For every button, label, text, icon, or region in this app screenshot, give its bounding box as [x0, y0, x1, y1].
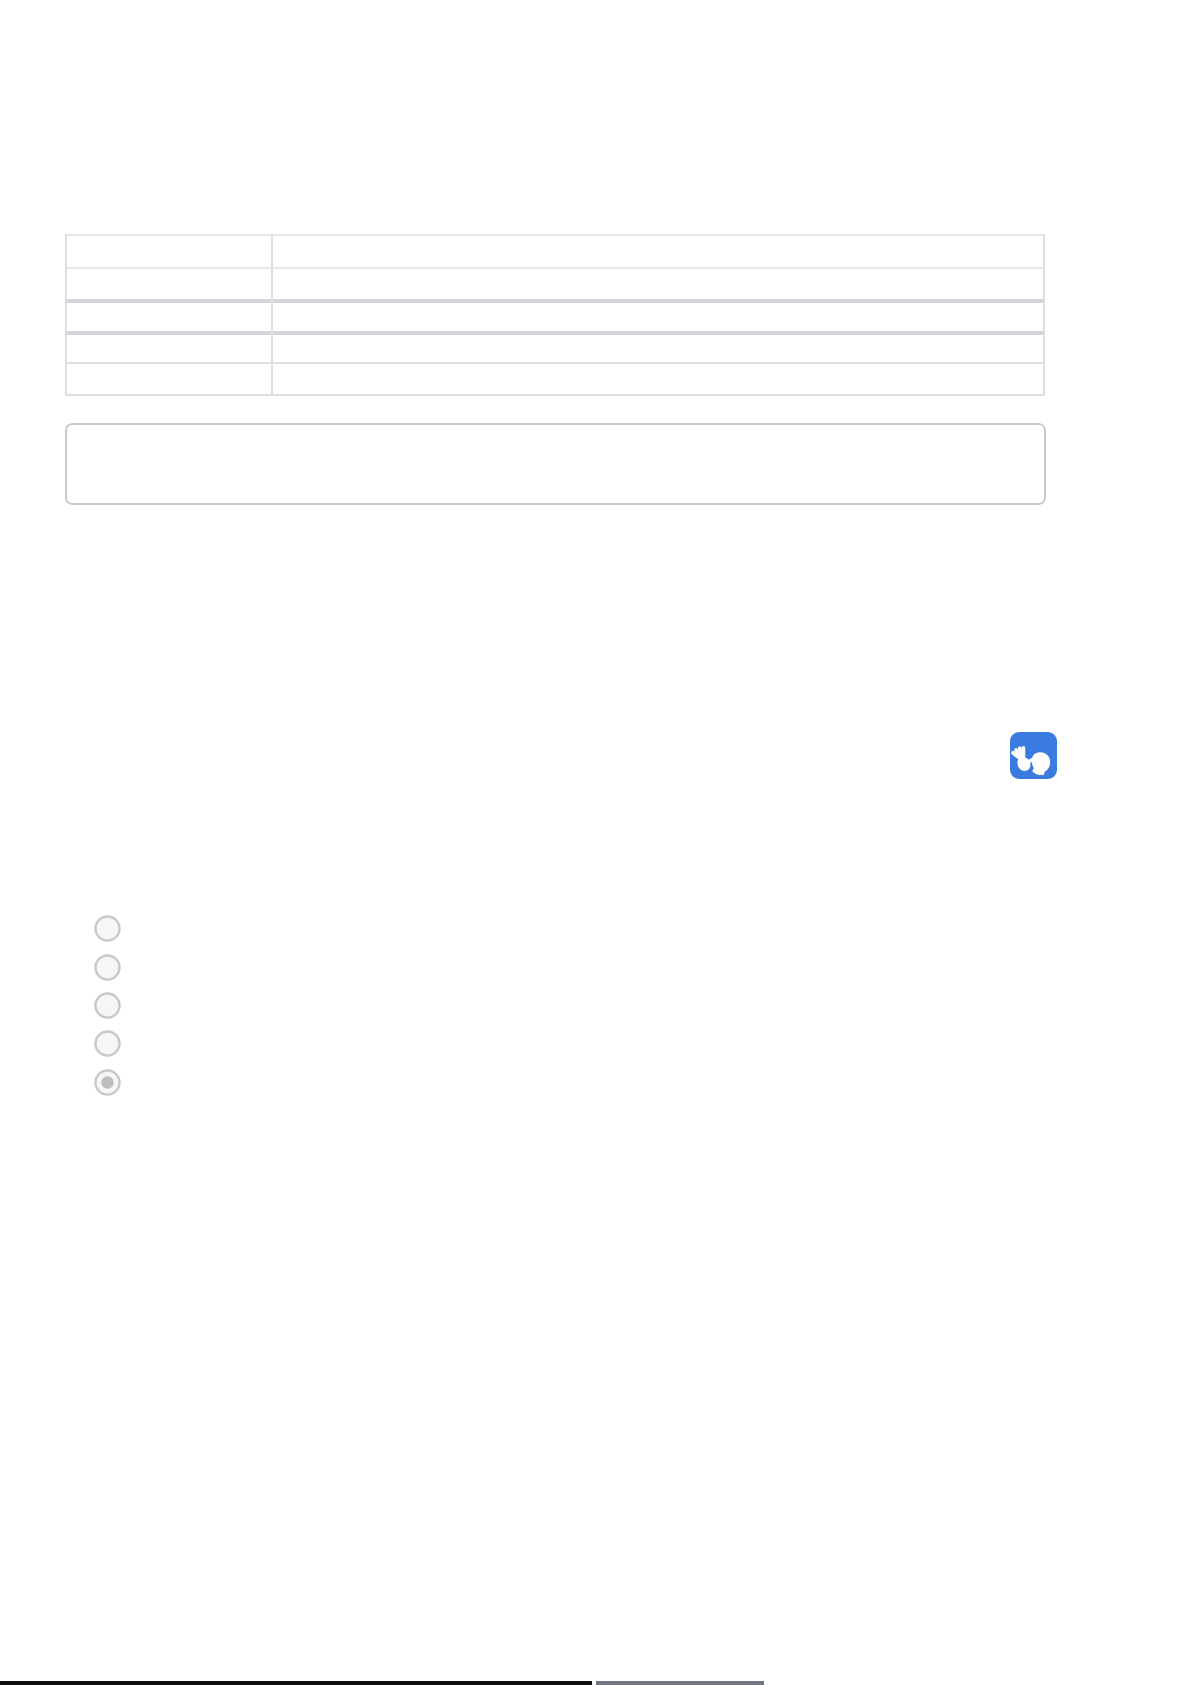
- button[interactable]: [65, 423, 1046, 505]
- button[interactable]: Option 5, selected: [92, 1067, 122, 1097]
- button[interactable]: Option 1: [92, 913, 122, 943]
- button[interactable]: Option 4: [92, 1028, 122, 1058]
- button[interactable]: Sign language interpreter: [1010, 732, 1057, 779]
- button[interactable]: Option 3: [92, 990, 122, 1020]
- button[interactable]: Option 2: [92, 952, 122, 982]
